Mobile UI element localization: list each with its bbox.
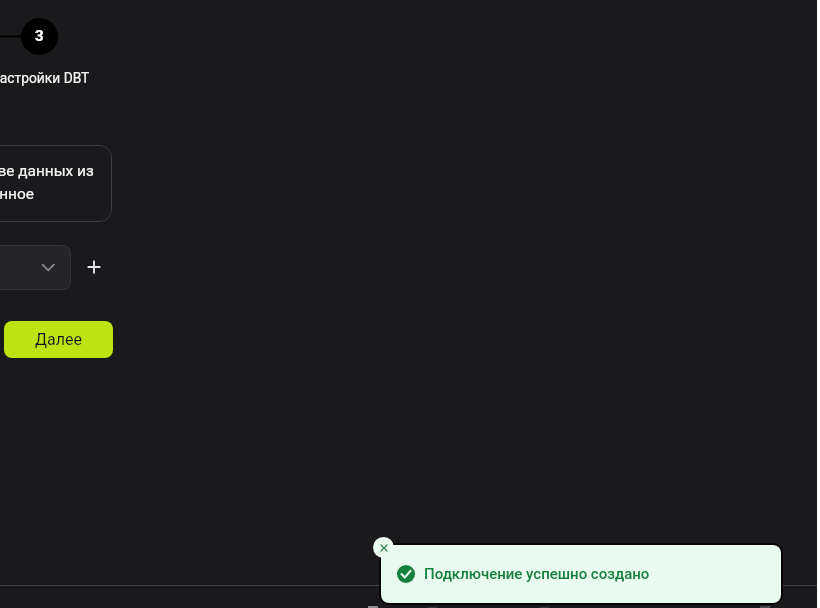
staticText: указанное [0,185,34,203]
staticText: Настройки DBT [0,70,90,86]
button[interactable]: Добавить [82,255,106,279]
staticText: Подключение успешно создано [424,565,650,583]
staticText: Далее [35,330,82,349]
staticText: 3 [35,27,44,45]
button[interactable]: Закрыть [373,537,394,558]
button[interactable]: Выбрать схему [0,245,71,290]
staticText: основе данных из [0,162,94,180]
button[interactable]: Подключение успешно создано [381,545,781,603]
button[interactable]: 3 [21,18,58,55]
button[interactable]: Далее [4,321,113,358]
